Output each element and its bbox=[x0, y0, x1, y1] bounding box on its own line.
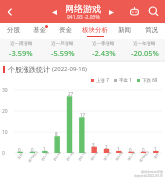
staticText: 27 bbox=[68, 91, 74, 97]
staticText: 1 bbox=[43, 146, 46, 152]
staticText: 0 bbox=[18, 147, 21, 153]
staticText: 跌停 bbox=[17, 152, 24, 160]
staticText: 近一季涨幅 bbox=[92, 41, 115, 47]
staticText: 30 bbox=[2, 87, 8, 94]
staticText: 0 bbox=[2, 150, 5, 157]
staticText: -2.43% bbox=[92, 48, 116, 58]
button[interactable]: 新闻 bbox=[111, 23, 138, 39]
button[interactable]: 分股 bbox=[0, 23, 26, 39]
staticText: 3 bbox=[92, 142, 95, 148]
staticText: 网络游戏 bbox=[65, 3, 101, 14]
staticText: 2 bbox=[105, 144, 108, 150]
staticText: -3.59% bbox=[9, 48, 33, 58]
staticText: 分股 bbox=[7, 26, 20, 34]
staticText: 涨0-1% bbox=[89, 150, 99, 161]
staticText: 10 bbox=[2, 129, 8, 136]
staticText: 跌5-7% bbox=[40, 150, 50, 161]
staticText: 8 bbox=[55, 131, 58, 137]
staticText: 涨1-3% bbox=[102, 150, 112, 161]
staticText: 近一月涨幅 bbox=[51, 41, 74, 47]
staticText: 下跌 69 bbox=[142, 77, 158, 83]
button[interactable]: Back bbox=[0, 0, 20, 23]
staticText: 板块分析 bbox=[82, 26, 108, 34]
staticText: 跌0-1% bbox=[77, 150, 87, 161]
staticText: 跌3-5% bbox=[52, 150, 62, 161]
staticText: 17 bbox=[80, 112, 86, 118]
staticText: 平盘 1 bbox=[119, 77, 132, 83]
staticText: 涨7%以上 bbox=[138, 149, 151, 163]
staticText: 新闻 bbox=[118, 26, 131, 34]
staticText: 近一年涨幅 bbox=[133, 41, 156, 47]
staticText: 20 bbox=[2, 108, 8, 115]
button[interactable]: Previous sector bbox=[48, 6, 61, 19]
staticText: 0 bbox=[129, 147, 132, 153]
staticText: 跌1-3% bbox=[65, 150, 75, 161]
staticText: 上涨 7 bbox=[96, 77, 109, 83]
staticText: 941.93 -2.05% bbox=[67, 14, 100, 21]
staticText: -20.05% bbox=[131, 48, 159, 58]
staticText: 数据来源:同花顺 制图日期:2022-09-16 bbox=[134, 170, 163, 178]
staticText: 资金 bbox=[59, 26, 72, 34]
button[interactable]: Search bbox=[144, 2, 163, 21]
staticText: 基金 bbox=[33, 26, 46, 34]
button[interactable]: 简况 bbox=[138, 23, 165, 39]
staticText: -5.59% bbox=[51, 48, 75, 58]
staticText: 1 bbox=[154, 146, 157, 152]
staticText: 1 bbox=[117, 146, 120, 152]
staticText: (2022-09-16) bbox=[52, 65, 87, 73]
button[interactable]: 基金 bbox=[26, 23, 52, 39]
staticText: 涨3-5% bbox=[114, 150, 124, 161]
button[interactable]: Next sector bbox=[105, 6, 118, 19]
staticText: 0 bbox=[31, 147, 34, 153]
staticText: 涨停 bbox=[153, 152, 160, 160]
staticText: 简况 bbox=[145, 26, 158, 34]
button[interactable]: 资金 bbox=[52, 23, 79, 39]
button[interactable]: AI assistant bbox=[125, 2, 144, 21]
staticText: 近一周涨幅 bbox=[10, 41, 33, 47]
staticText: 0 bbox=[142, 147, 145, 153]
button[interactable]: 板块分析 bbox=[79, 23, 111, 39]
staticText: 涨5-7% bbox=[126, 150, 136, 161]
staticText: 个股涨跌统计 bbox=[8, 65, 50, 74]
staticText: 跌7%以上 bbox=[27, 149, 40, 163]
